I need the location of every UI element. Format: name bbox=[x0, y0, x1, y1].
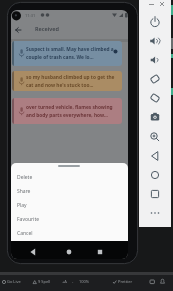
staticText: Received bbox=[35, 25, 59, 32]
button[interactable] bbox=[147, 14, 163, 30]
button[interactable] bbox=[13, 25, 25, 37]
button[interactable]: Cancel bbox=[11, 227, 128, 241]
staticText: 100% bbox=[79, 279, 90, 284]
button[interactable] bbox=[147, 33, 163, 49]
button[interactable] bbox=[147, 129, 163, 145]
button[interactable] bbox=[147, 71, 163, 87]
button[interactable]: over turned vehicle, flames showing and … bbox=[12, 98, 122, 124]
staticText: 11:31 bbox=[25, 13, 36, 18]
button[interactable] bbox=[147, 109, 163, 125]
button[interactable] bbox=[63, 246, 75, 258]
button[interactable]: Delete bbox=[11, 171, 128, 185]
staticText: Suspect is small. May have climbed a cou… bbox=[26, 46, 114, 60]
staticText: Favourite bbox=[17, 216, 40, 223]
button[interactable]: Favourite bbox=[11, 213, 128, 227]
staticText: Share bbox=[17, 188, 31, 195]
staticText: Prettier bbox=[118, 279, 133, 284]
button[interactable] bbox=[147, 52, 163, 68]
button[interactable]: Play bbox=[11, 199, 128, 213]
button[interactable] bbox=[94, 246, 106, 258]
button[interactable]: Suspect is small. May have climbed a cou… bbox=[12, 41, 122, 66]
button[interactable]: Share bbox=[11, 185, 128, 199]
staticText: Delete bbox=[17, 174, 33, 181]
staticText: over turned vehicle, flames showing and … bbox=[26, 104, 113, 118]
button[interactable] bbox=[147, 148, 163, 164]
button[interactable] bbox=[27, 246, 39, 258]
staticText: - bbox=[72, 279, 74, 284]
button[interactable] bbox=[147, 90, 163, 106]
button[interactable] bbox=[147, 186, 163, 202]
staticText: Go Live bbox=[7, 279, 21, 284]
button[interactable] bbox=[147, 167, 163, 183]
staticText: Play bbox=[17, 202, 27, 209]
staticText: 9 Spell bbox=[38, 279, 51, 284]
staticText: +A bbox=[62, 279, 67, 284]
staticText: Cancel bbox=[17, 230, 33, 237]
button[interactable]: so my husband climbed up to get the cat … bbox=[12, 71, 122, 91]
button[interactable] bbox=[147, 205, 163, 221]
staticText: so my husband climbed up to get the cat … bbox=[26, 74, 115, 88]
